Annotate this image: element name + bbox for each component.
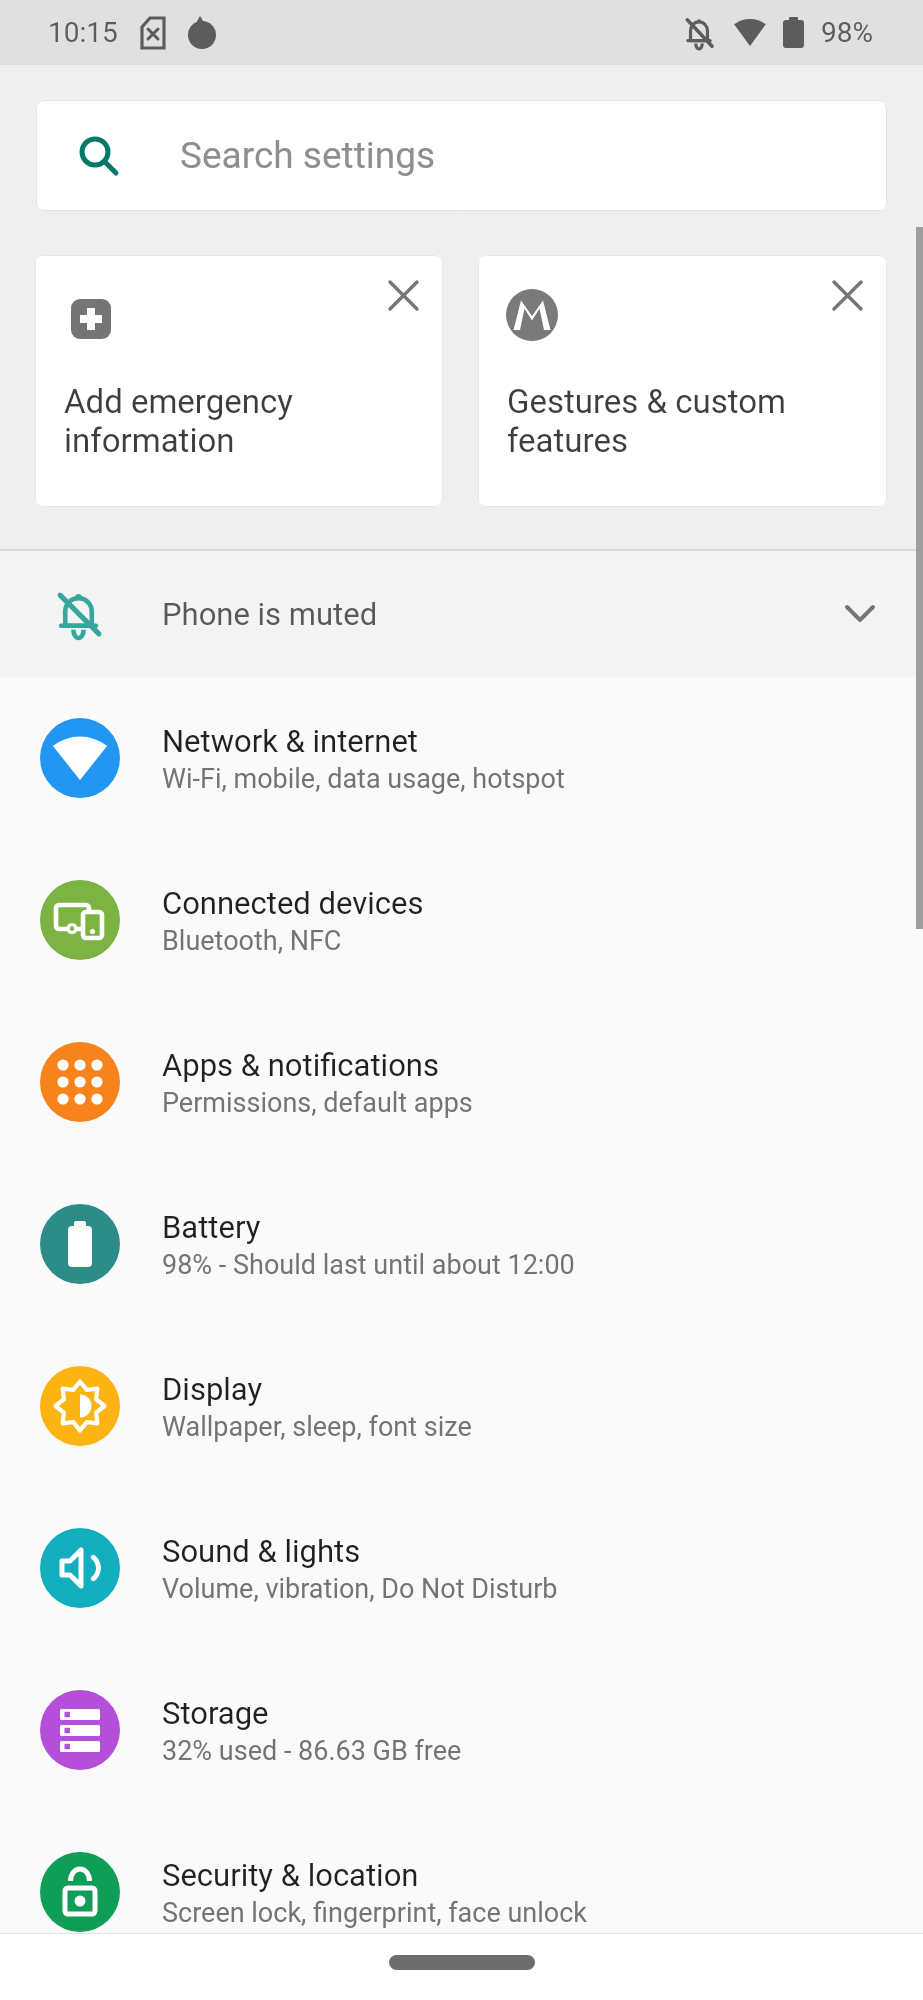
staticText: Display <box>162 1371 263 1407</box>
button[interactable]: Connected devices <box>0 839 923 1001</box>
button[interactable]: Search settings <box>36 100 887 211</box>
staticText: 10:15 <box>48 16 118 49</box>
staticText: Security & location <box>162 1857 419 1893</box>
staticText: Phone is muted <box>162 596 378 632</box>
staticText: Volume, vibration, Do Not Disturb <box>162 1573 558 1605</box>
button[interactable]: Display <box>0 1325 923 1487</box>
staticText: Search settings <box>180 134 436 177</box>
staticText: Wi-Fi, mobile, data usage, hotspot <box>162 763 565 795</box>
button[interactable]: Add emergency <box>35 255 443 507</box>
staticText: Gestures & custom <box>507 382 787 421</box>
staticText: Apps & notifications <box>162 1047 439 1083</box>
staticText: Battery <box>162 1209 261 1245</box>
button[interactable]: Sound & lights <box>0 1487 923 1649</box>
button[interactable]: Gestures & custom <box>478 255 887 507</box>
staticText: Wallpaper, sleep, font size <box>162 1411 472 1443</box>
button[interactable]: Network & internet <box>0 677 923 839</box>
button[interactable]: Phone is muted <box>0 551 923 677</box>
button[interactable]: Security & location <box>0 1811 923 1973</box>
staticText: Bluetooth, NFC <box>162 925 342 957</box>
button[interactable] <box>829 277 865 313</box>
staticText: 98% - Should last until about 12:00 <box>162 1249 575 1281</box>
staticText: features <box>507 421 628 460</box>
staticText: Connected devices <box>162 885 424 921</box>
button[interactable] <box>385 277 421 313</box>
staticText: Screen lock, fingerprint, face unlock <box>162 1897 588 1929</box>
button[interactable]: Storage <box>0 1649 923 1811</box>
button[interactable]: Battery <box>0 1163 923 1325</box>
staticText: Sound & lights <box>162 1533 361 1569</box>
staticText: information <box>64 421 235 460</box>
staticText: 32% used - 86.63 GB free <box>162 1735 462 1767</box>
staticText: Network & internet <box>162 723 418 759</box>
button[interactable]: Apps & notifications <box>0 1001 923 1163</box>
staticText: 98% <box>821 16 873 49</box>
staticText: Storage <box>162 1695 269 1731</box>
staticText: Add emergency <box>64 382 293 421</box>
button[interactable] <box>389 1955 535 1970</box>
staticText: Permissions, default apps <box>162 1087 473 1119</box>
